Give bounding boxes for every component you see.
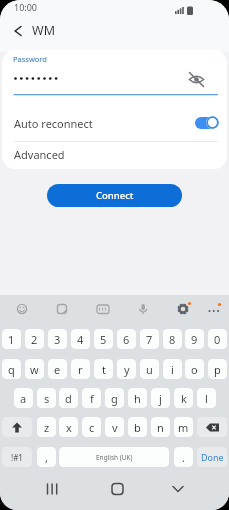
button[interactable]: 6 xyxy=(117,329,136,349)
staticText: Auto reconnect xyxy=(14,116,93,131)
staticText: English (UK) xyxy=(96,453,133,462)
button[interactable]: p xyxy=(208,359,227,379)
button[interactable]: d xyxy=(59,388,78,408)
button[interactable]: 4 xyxy=(71,329,90,349)
button[interactable]: 0 xyxy=(208,329,227,349)
button[interactable]: 5 xyxy=(94,329,113,349)
button[interactable] xyxy=(195,117,218,129)
button[interactable]: j xyxy=(151,388,170,408)
button[interactable]: Done xyxy=(197,447,227,467)
button[interactable] xyxy=(2,417,32,437)
button[interactable]: y xyxy=(117,359,136,379)
staticText: u xyxy=(146,362,153,377)
staticText: k xyxy=(181,391,187,406)
staticText: h xyxy=(134,391,141,406)
staticText: j xyxy=(159,391,162,406)
button[interactable]: c xyxy=(82,417,101,437)
button[interactable]: l xyxy=(197,388,216,408)
staticText: Advanced xyxy=(14,147,65,162)
button[interactable]: g xyxy=(105,388,124,408)
staticText: Connect xyxy=(96,189,134,202)
staticText: . xyxy=(182,450,185,465)
staticText: 6 xyxy=(123,332,130,347)
staticText: l xyxy=(205,391,208,406)
staticText: , xyxy=(45,450,48,465)
staticText: 4 xyxy=(77,332,84,347)
button[interactable]: o xyxy=(185,359,204,379)
staticText: s xyxy=(44,391,50,406)
staticText: p xyxy=(214,362,221,377)
button[interactable]: 8 xyxy=(163,329,182,349)
button[interactable]: u xyxy=(140,359,159,379)
button[interactable] xyxy=(36,474,68,506)
staticText: y xyxy=(124,362,130,377)
staticText: f xyxy=(90,391,94,406)
button[interactable]: a xyxy=(14,388,33,408)
button[interactable] xyxy=(8,22,26,40)
button[interactable]: x xyxy=(59,417,78,437)
button[interactable]: q xyxy=(2,359,21,379)
button[interactable]: !#1 xyxy=(2,447,32,467)
staticText: n xyxy=(157,420,164,435)
staticText: g xyxy=(111,391,118,406)
button[interactable]: k xyxy=(174,388,193,408)
staticText: v xyxy=(112,420,118,435)
button[interactable]: v xyxy=(105,417,124,437)
staticText: z xyxy=(44,420,50,435)
button[interactable] xyxy=(182,64,222,94)
staticText: c xyxy=(89,420,95,435)
staticText: o xyxy=(191,362,198,377)
staticText: 7 xyxy=(146,332,153,347)
staticText: x xyxy=(66,420,72,435)
button[interactable] xyxy=(101,474,133,506)
staticText: m xyxy=(178,420,189,435)
button[interactable]: 3 xyxy=(48,329,67,349)
staticText: !#1 xyxy=(11,452,23,463)
staticText: t xyxy=(102,362,106,377)
button[interactable]: f xyxy=(82,388,101,408)
button[interactable]: 1 xyxy=(2,329,21,349)
button[interactable]: . xyxy=(174,447,193,467)
staticText: WM xyxy=(32,22,55,39)
button[interactable]: n xyxy=(151,417,170,437)
staticText: 2 xyxy=(31,332,38,347)
button[interactable]: z xyxy=(37,417,56,437)
button[interactable] xyxy=(162,474,194,506)
button[interactable]: English (UK) xyxy=(59,447,169,467)
button[interactable] xyxy=(2,50,182,98)
staticText: Done xyxy=(201,451,224,463)
staticText: 0 xyxy=(214,332,221,347)
button[interactable]: 9 xyxy=(185,329,204,349)
staticText: a xyxy=(20,391,27,406)
staticText: 3 xyxy=(54,332,61,347)
staticText: i xyxy=(171,362,174,377)
staticText: b xyxy=(134,420,141,435)
button[interactable]: r xyxy=(71,359,90,379)
staticText: 8 xyxy=(169,332,176,347)
button[interactable]: m xyxy=(174,417,193,437)
staticText: r xyxy=(78,362,83,377)
button[interactable]: e xyxy=(48,359,67,379)
staticText: w xyxy=(30,362,39,377)
button[interactable]: 2 xyxy=(25,329,44,349)
staticText: 9 xyxy=(191,332,198,347)
staticText: q xyxy=(8,362,15,377)
button[interactable]: i xyxy=(163,359,182,379)
button[interactable] xyxy=(197,417,227,437)
staticText: 1 xyxy=(8,332,15,347)
staticText: 5 xyxy=(100,332,107,347)
staticText: d xyxy=(65,391,72,406)
button[interactable]: t xyxy=(94,359,113,379)
button[interactable]: Connect xyxy=(47,184,182,207)
button[interactable]: 7 xyxy=(140,329,159,349)
button[interactable]: w xyxy=(25,359,44,379)
button[interactable] xyxy=(2,106,187,140)
button[interactable]: h xyxy=(128,388,147,408)
button[interactable]: s xyxy=(37,388,56,408)
staticText: 10:00 xyxy=(14,1,38,13)
button[interactable]: b xyxy=(128,417,147,437)
button[interactable] xyxy=(2,142,227,169)
staticText: e xyxy=(54,362,61,377)
button[interactable]: , xyxy=(37,447,56,467)
staticText: Password xyxy=(13,54,47,64)
